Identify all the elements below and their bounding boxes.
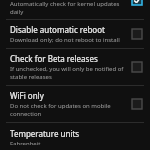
other: Checked [132, 0, 142, 5]
other: Unchecked [132, 99, 142, 109]
staticText: Do not check for updates on mobile conne… [10, 102, 126, 118]
button[interactable]: Automatically check for kernel updates [0, 0, 150, 19]
button[interactable]: Check for Beta releases [0, 49, 150, 85]
staticText: Automatically check for kernel updates [10, 0, 120, 8]
other: Unchecked [132, 62, 142, 72]
button[interactable]: WiFi only [0, 86, 150, 122]
staticText: Check for Beta releases [10, 53, 98, 64]
staticText: Fahrenheit [10, 140, 41, 145]
staticText: Disable automatic reboot [10, 24, 105, 35]
staticText: daily [10, 8, 24, 16]
other: Unchecked [132, 29, 142, 39]
button[interactable]: Temperature units [0, 123, 150, 150]
staticText: Temperature units [10, 128, 80, 139]
staticText: WiFi only [10, 90, 44, 101]
staticText: If unchecked, you will only be notified … [10, 65, 126, 81]
button[interactable]: Disable automatic reboot [0, 20, 150, 48]
staticText: Download only; do not reboot to install [10, 36, 120, 44]
